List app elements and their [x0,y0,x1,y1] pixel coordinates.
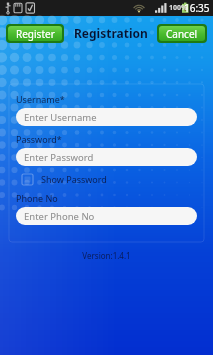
button[interactable]: Show Password checkbox [16,172,107,186]
staticText: Phone No [16,192,58,204]
button[interactable]: Register [8,26,62,41]
staticText: Username* [16,93,65,105]
staticText: Registration [74,25,148,41]
staticText: Enter Password [24,151,94,164]
button[interactable]: Enter Password [16,148,197,166]
other: Show Password checkbox [22,174,33,185]
staticText: Show Password [41,173,107,185]
staticText: 16:35 [184,1,210,15]
button[interactable]: Cancel [159,26,205,41]
staticText: Enter Phone No [24,210,95,223]
staticText: Cancel [166,27,198,41]
staticText: 100% [169,3,188,13]
staticText: Register [16,27,55,41]
button[interactable]: Enter Phone No [16,207,197,225]
staticText: Password* [16,133,62,145]
staticText: Enter Username [24,111,97,124]
staticText: Version:1.4.1 [0,250,213,261]
button[interactable]: Enter Username [16,108,197,126]
